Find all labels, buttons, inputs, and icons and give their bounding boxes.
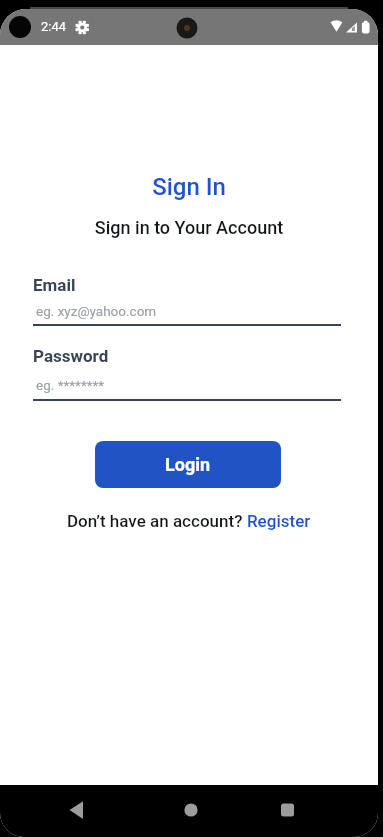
staticText: Email: [33, 275, 76, 295]
button[interactable]: eg. ********: [33, 369, 341, 399]
button[interactable]: [63, 800, 90, 821]
staticText: Sign in to Your Account: [0, 217, 378, 238]
staticText: Login: [165, 454, 211, 475]
button[interactable]: Login: [95, 441, 281, 488]
staticText: 2:44: [41, 19, 67, 34]
staticText: Sign In: [0, 173, 378, 201]
button[interactable]: eg. xyz@yahoo.com: [33, 295, 341, 326]
staticText: Password: [33, 346, 109, 366]
button[interactable]: [178, 800, 204, 821]
staticText: eg. ********: [36, 377, 105, 393]
staticText: Don’t have an account?: [67, 511, 247, 531]
button[interactable]: Register: [247, 511, 311, 531]
button[interactable]: [274, 800, 301, 821]
staticText: eg. xyz@yahoo.com: [36, 303, 157, 319]
